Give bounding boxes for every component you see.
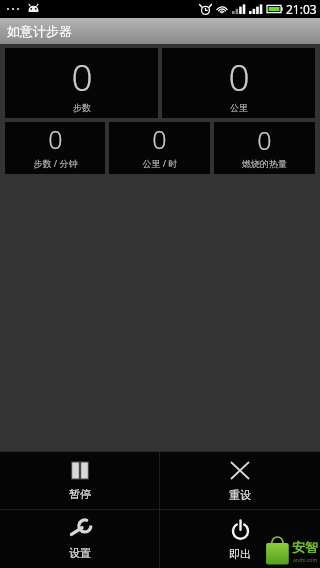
staticText: 即出 [229, 547, 251, 561]
staticText: 21:03 [286, 1, 317, 17]
staticText: 重设 [229, 488, 251, 502]
staticText: 0 [71, 51, 93, 101]
button[interactable]: Pause [0, 452, 159, 509]
staticText: 0 [228, 51, 250, 101]
button[interactable]: Settings [0, 510, 159, 568]
button[interactable]: 0 [5, 122, 105, 174]
staticText: 公里 / 时 [142, 157, 178, 169]
staticText: 暂停 [69, 487, 91, 501]
staticText: 步数 [73, 102, 91, 113]
button[interactable]: 0 [5, 48, 158, 118]
staticText: 如意计步器 [7, 23, 72, 39]
staticText: anzhi.com [293, 557, 318, 564]
button[interactable]: 0 [162, 48, 315, 118]
button[interactable]: 0 [109, 122, 210, 174]
staticText: 0 [257, 123, 272, 157]
staticText: 0 [48, 122, 63, 156]
staticText: 0 [152, 122, 167, 156]
button[interactable]: Exit [160, 510, 320, 568]
staticText: 燃烧的热量 [242, 158, 287, 169]
button[interactable]: Reset [160, 452, 320, 509]
staticText: 安智 [292, 539, 318, 555]
button[interactable]: 0 [214, 122, 315, 174]
staticText: 步数 / 分钟 [33, 157, 78, 169]
staticText: 公里 [230, 102, 248, 113]
staticText: 设置 [69, 546, 91, 560]
